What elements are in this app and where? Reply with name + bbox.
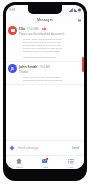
staticText: John Smith — [19, 64, 38, 69]
staticText: Please see the attached document. — [19, 32, 65, 36]
staticText: JS — [11, 67, 14, 71]
button[interactable]: JS — [6, 62, 84, 84]
staticText: 9:41 — [9, 8, 16, 12]
staticText: review. I have updated the figures and — [23, 44, 61, 47]
staticText: added a short summary on page two so — [23, 47, 63, 50]
staticText: Home — [16, 165, 23, 168]
staticText: everyone can get up to speed quickly. — [23, 50, 60, 53]
button[interactable]: Add attachment — [9, 145, 15, 151]
staticText: Let me know if anything looks off. — [23, 56, 57, 59]
staticText: Send — [72, 146, 80, 150]
staticText: 10:30 AM — [27, 27, 39, 31]
staticText: Mail — [43, 165, 48, 168]
staticText: Ella — [19, 26, 25, 31]
button[interactable]: Mail — [32, 156, 58, 169]
staticText: Messages — [37, 17, 53, 22]
button[interactable]: Send — [71, 144, 81, 152]
button[interactable]: Ella — [6, 24, 84, 61]
staticText: version of the quarterly report for your — [23, 41, 62, 44]
staticText: Hi team, please find attached the latest — [23, 38, 62, 41]
button[interactable]: Lists — [58, 156, 84, 169]
staticText: again tonight and let me know if helpful… — [23, 79, 63, 82]
staticText: Thanks — [19, 70, 29, 74]
staticText: Great, thanks for this. We will review i… — [23, 76, 61, 79]
staticText: Send message — [18, 146, 39, 150]
button[interactable]: More options — [77, 18, 81, 22]
staticText: 9:02 AM — [40, 65, 50, 69]
staticText: Lists — [68, 165, 74, 168]
button[interactable]: Home — [6, 156, 32, 169]
